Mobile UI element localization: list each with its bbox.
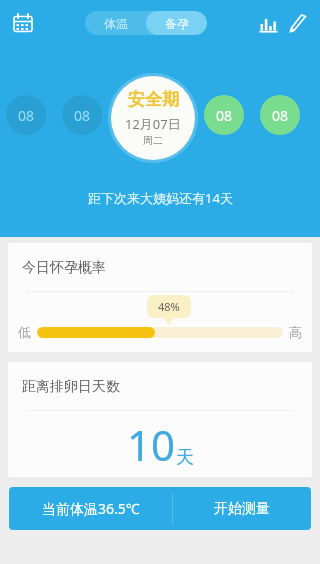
staticText: 开始测量 <box>214 500 270 518</box>
staticText: 低 <box>18 324 31 340</box>
staticText: 距离排卵日天数 <box>22 378 120 396</box>
staticText: 08 <box>74 106 91 125</box>
button[interactable]: 08 <box>260 95 300 135</box>
staticText: 备孕 <box>165 16 189 31</box>
button[interactable]: Statistics <box>254 9 282 37</box>
button[interactable]: 当前体温36.5℃ <box>9 487 172 530</box>
staticText: 体温 <box>104 16 128 31</box>
staticText: 周二 <box>143 134 163 147</box>
staticText: 08 <box>18 106 35 125</box>
staticText: 12月07日 <box>125 115 181 133</box>
button[interactable]: 08 <box>6 95 46 135</box>
button[interactable]: 08 <box>204 95 244 135</box>
button[interactable]: 开始测量 <box>173 487 311 530</box>
staticText: 08 <box>272 106 289 125</box>
button[interactable]: 备孕 <box>146 11 207 35</box>
staticText: 天 <box>176 446 194 469</box>
staticText: 安全期 <box>128 89 179 110</box>
staticText: 当前体温36.5℃ <box>42 499 140 518</box>
staticText: 10 <box>127 416 176 473</box>
button[interactable]: 体温 <box>85 11 146 35</box>
button[interactable]: 08 <box>62 95 102 135</box>
button[interactable]: Edit <box>284 9 312 37</box>
staticText: 48% <box>158 299 180 314</box>
staticText: 今日怀孕概率 <box>22 259 106 277</box>
button[interactable]: Calendar <box>8 8 38 38</box>
staticText: 08 <box>216 106 233 125</box>
button[interactable]: 安全期 <box>111 76 195 160</box>
staticText: 高 <box>289 324 302 340</box>
staticText: 距下次来大姨妈还有14天 <box>88 189 233 207</box>
